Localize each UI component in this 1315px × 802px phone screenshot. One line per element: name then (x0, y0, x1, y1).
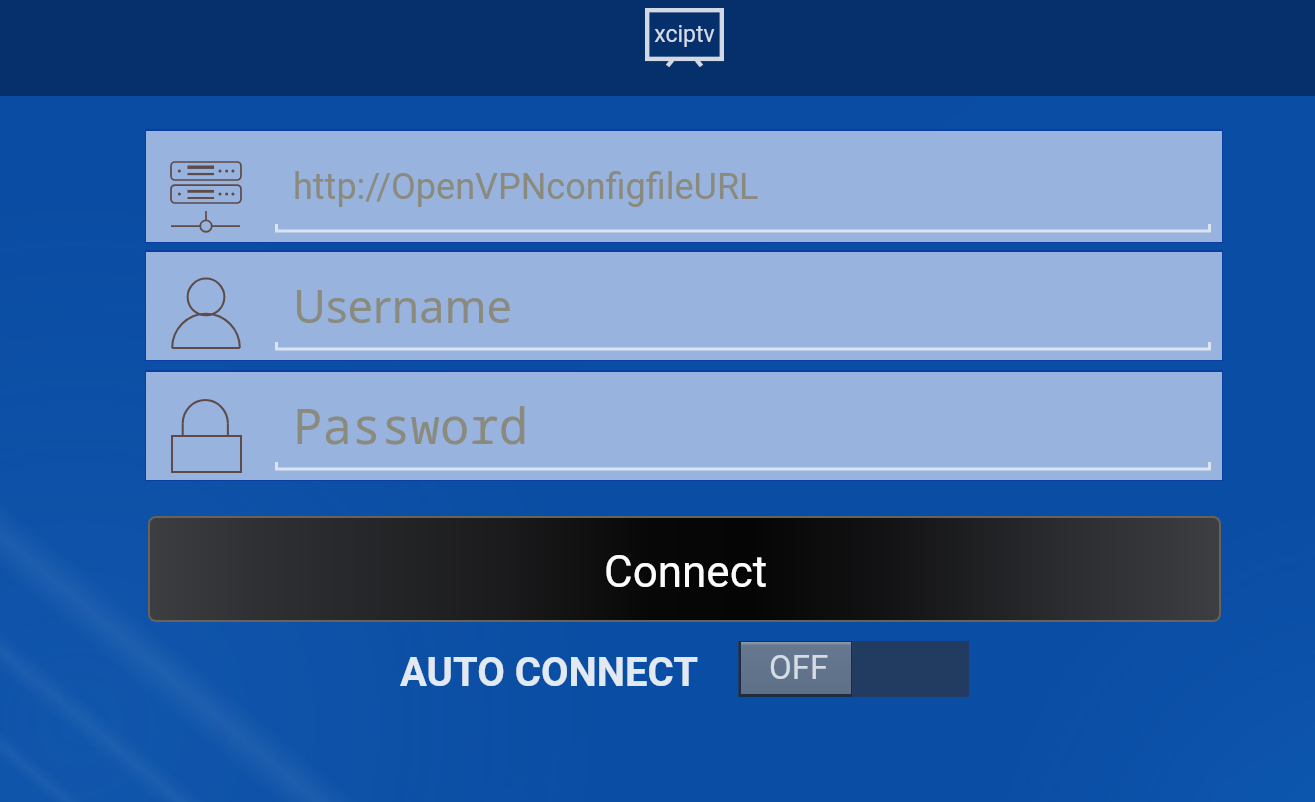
other: xciptv logo (645, 8, 724, 66)
staticText: Connect (604, 546, 768, 598)
staticText: xciptv (654, 21, 715, 48)
staticText: OFF (769, 648, 829, 687)
staticText: http://OpenVPNconfigfileURL (293, 166, 759, 208)
button[interactable]: Password (146, 372, 1222, 480)
button[interactable]: Auto connect, OFF (738, 641, 969, 697)
button[interactable]: Username (146, 252, 1222, 360)
button[interactable]: Connect (150, 518, 1219, 620)
staticText: AUTO CONNECT (400, 649, 698, 696)
staticText: Password (293, 392, 529, 459)
button[interactable]: OpenVPN config file URL (146, 131, 1222, 242)
staticText: Username (293, 275, 512, 336)
